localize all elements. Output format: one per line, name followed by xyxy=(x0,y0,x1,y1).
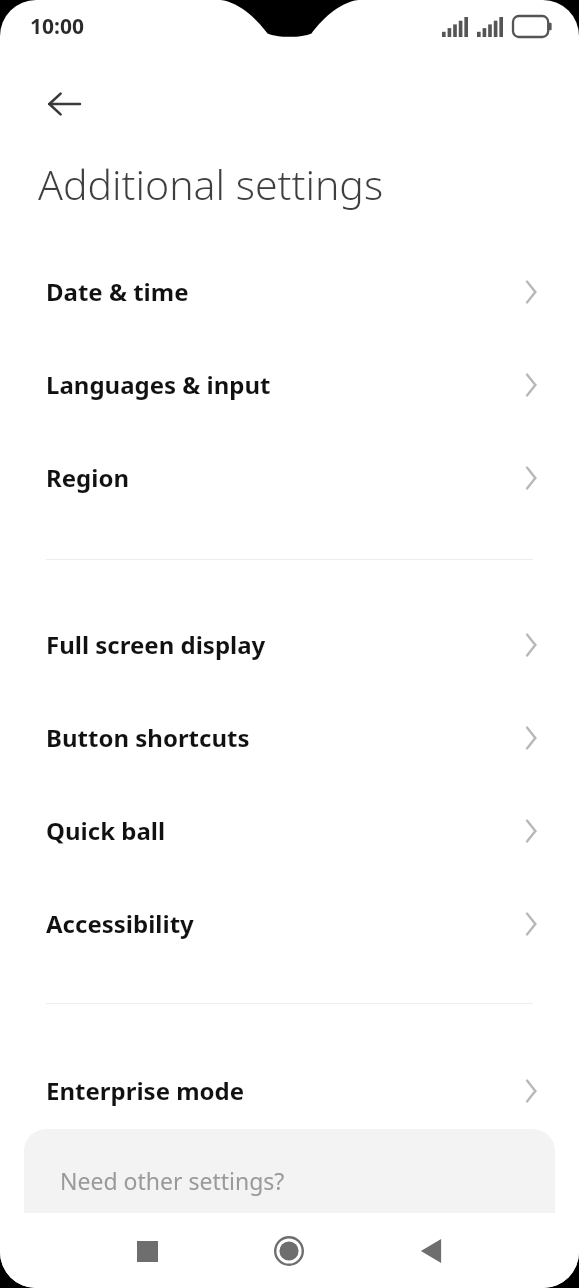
staticText: Additional settings xyxy=(38,156,384,212)
button[interactable]: Need other settings? xyxy=(24,1129,555,1213)
staticText: Full screen display xyxy=(46,628,523,661)
button[interactable]: Home xyxy=(262,1224,316,1278)
staticText: Region xyxy=(46,461,523,494)
button[interactable]: Languages & input xyxy=(0,338,579,431)
staticText: 10:00 xyxy=(30,12,84,41)
button[interactable]: Date & time xyxy=(0,245,579,338)
button[interactable]: Back xyxy=(34,74,94,134)
staticText: Need other settings? xyxy=(60,1165,285,1196)
button[interactable]: Quick ball xyxy=(0,784,579,877)
staticText: Quick ball xyxy=(46,814,523,847)
button[interactable]: Accessibility xyxy=(0,877,579,970)
staticText: Date & time xyxy=(46,275,523,308)
button[interactable]: Enterprise mode xyxy=(0,1044,579,1137)
button[interactable]: Back xyxy=(404,1224,458,1278)
staticText: Accessibility xyxy=(46,907,523,940)
button[interactable]: Full screen display xyxy=(0,598,579,691)
staticText: Languages & input xyxy=(46,368,523,401)
staticText: Enterprise mode xyxy=(46,1074,523,1107)
button[interactable]: Button shortcuts xyxy=(0,691,579,784)
staticText: Button shortcuts xyxy=(46,721,523,754)
button[interactable]: Region xyxy=(0,431,579,524)
button[interactable]: Recent apps xyxy=(120,1224,174,1278)
